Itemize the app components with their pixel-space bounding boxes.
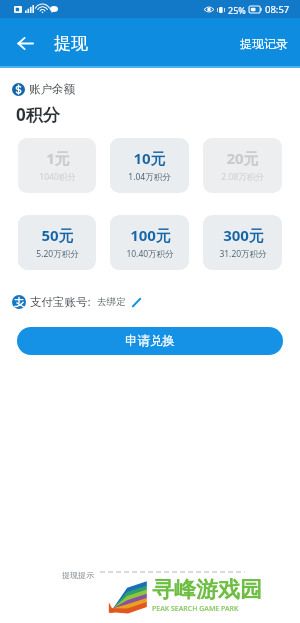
button[interactable]: 返回	[8, 26, 42, 60]
staticText: 账户余额	[29, 82, 75, 96]
button[interactable]: 支付宝账号:	[12, 294, 143, 310]
staticText: 去绑定	[97, 296, 126, 308]
button[interactable]: 1元	[18, 138, 96, 193]
button[interactable]: 300元	[203, 215, 282, 270]
other: 编辑	[130, 296, 143, 309]
staticText: 100元	[130, 225, 171, 245]
staticText: 申请兑换	[125, 333, 175, 349]
staticText: 0积分	[16, 103, 60, 126]
staticText: 10元	[133, 148, 166, 168]
button[interactable]: 100元	[110, 215, 189, 270]
button[interactable]: 50元	[18, 215, 96, 270]
staticText: 提现记录	[240, 36, 288, 51]
staticText: 提现	[54, 33, 88, 54]
staticText: 300元	[223, 225, 264, 245]
staticText: 50元	[41, 225, 74, 245]
staticText: 1元	[46, 148, 70, 168]
button[interactable]: 申请兑换	[17, 327, 283, 355]
staticText: 25%	[228, 4, 246, 16]
staticText: PEAK SEARCH GAME PARK	[152, 604, 239, 614]
staticText: 1040积分	[39, 171, 76, 183]
staticText: 2.08万积分	[221, 171, 264, 183]
staticText: 31.20万积分	[219, 248, 267, 260]
staticText: 10.40万积分	[126, 248, 174, 260]
staticText: 支付宝账号:	[30, 294, 91, 310]
staticText: 20元	[226, 148, 259, 168]
staticText: 08:57	[265, 3, 290, 16]
button[interactable]: 提现记录	[228, 26, 300, 61]
staticText: 1.04万积分	[128, 171, 171, 183]
staticText: 提现提示	[62, 570, 94, 580]
staticText: 5.20万积分	[36, 248, 79, 260]
button[interactable]: 20元	[203, 138, 282, 193]
staticText: 寻峰游戏园	[152, 576, 262, 604]
button[interactable]: 10元	[110, 138, 189, 193]
